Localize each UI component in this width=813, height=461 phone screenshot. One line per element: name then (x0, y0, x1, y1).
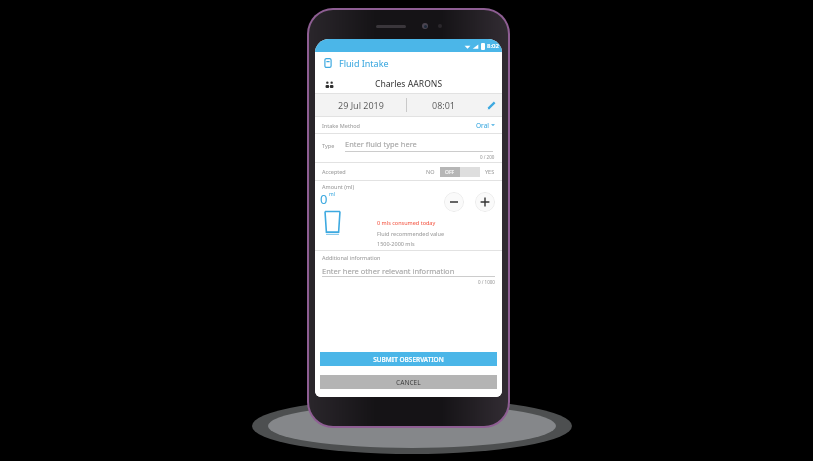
button[interactable]: Decrease (444, 192, 464, 212)
staticText: Intake Method (322, 122, 360, 129)
staticText: 0 mls consumed today (377, 219, 436, 226)
staticText: SUBMIT OBSERVATION (373, 355, 444, 364)
staticText: NO (426, 168, 435, 175)
button[interactable]: Increase (475, 192, 495, 212)
button[interactable]: Intake Method (315, 117, 502, 133)
button[interactable]: SUBMIT OBSERVATION (320, 352, 497, 366)
button[interactable]: Edit (480, 94, 502, 116)
staticText: Enter fluid type here (345, 139, 417, 149)
staticText: 29 Jul 2019 (338, 99, 384, 111)
staticText: YES (485, 168, 495, 175)
staticText: Enter here other relevant information (322, 266, 455, 276)
button[interactable]: 08:01 (407, 94, 480, 116)
staticText: 1500-2000 mls (377, 240, 415, 247)
button[interactable]: OFF (440, 167, 480, 177)
staticText: Additional information (322, 254, 381, 261)
staticText: 0 (320, 190, 328, 208)
staticText: Fluid recommended value (377, 230, 445, 237)
staticText: Type (322, 142, 335, 149)
button[interactable]: Enter here other relevant information (322, 265, 495, 276)
staticText: OFF (445, 169, 455, 176)
staticText: 0 / 200 (480, 154, 495, 160)
button[interactable]: 29 Jul 2019 (315, 94, 406, 116)
staticText: Accepted (322, 168, 346, 175)
button[interactable]: CANCEL (320, 375, 497, 389)
staticText: Oral (476, 121, 489, 130)
staticText: ml (329, 191, 335, 198)
staticText: Amount (ml) (322, 183, 355, 190)
staticText: 0 / 1000 (478, 279, 495, 285)
staticText: 8:02 (487, 42, 499, 50)
button[interactable]: Patients (322, 77, 336, 91)
button[interactable]: Enter fluid type here (345, 137, 493, 151)
staticText: CANCEL (396, 378, 421, 387)
staticText: Fluid Intake (339, 57, 389, 69)
staticText: 08:01 (432, 99, 456, 111)
staticText: Charles AARONS (375, 78, 443, 90)
